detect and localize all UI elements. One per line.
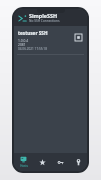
- button[interactable]: Hosts: [14, 153, 33, 171]
- button[interactable]: Keys: [51, 153, 69, 171]
- button[interactable]: Tools: [69, 153, 87, 171]
- staticText: 1.0.0.4: [18, 38, 29, 42]
- button[interactable]: Favourites: [33, 153, 51, 171]
- staticText: 2081: [18, 42, 26, 46]
- staticText: No SSH Connections: [29, 19, 60, 23]
- button[interactable]: SimpleSSH logo: [17, 13, 27, 23]
- staticText: testuser SSH: [18, 30, 48, 36]
- button[interactable]: Connection options: [73, 32, 83, 42]
- staticText: Hosts: [20, 164, 28, 168]
- button[interactable]: testuser SSH: [14, 26, 87, 54]
- staticText: SimpleSSH: [29, 12, 58, 19]
- staticText: 04.06.2021 17:55:18: [18, 47, 47, 51]
